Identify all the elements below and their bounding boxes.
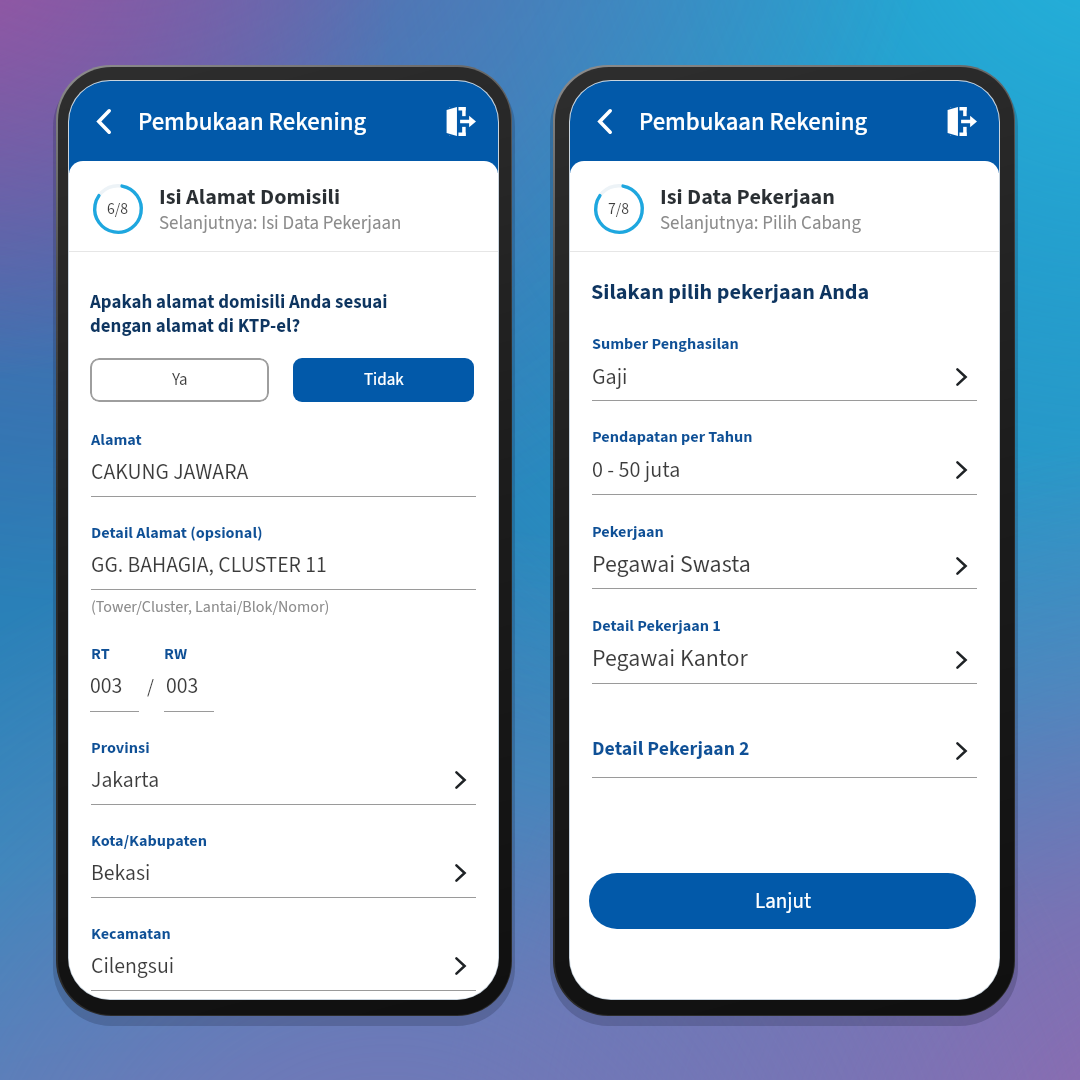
button[interactable] (570, 426, 999, 519)
staticText: Isi Data Pekerjaan (660, 181, 835, 213)
staticText: Alamat (91, 428, 142, 451)
button[interactable]: Lanjut (589, 873, 976, 929)
staticText: Detail Pekerjaan 1 (592, 614, 721, 637)
button[interactable] (570, 520, 999, 613)
staticText: Sumber Penghasilan (592, 332, 739, 355)
staticText: Bekasi (91, 858, 151, 889)
staticText: (Tower/Cluster, Lantai/Blok/Nomor) (91, 596, 330, 619)
staticText: Jakarta (91, 765, 160, 796)
staticText: RW (164, 642, 188, 665)
staticText: Gaji (592, 361, 628, 392)
button[interactable] (570, 331, 999, 424)
button[interactable] (69, 922, 498, 999)
staticText: / (147, 673, 154, 701)
staticText: Pembukaan Rekening (639, 105, 868, 140)
staticText: GG. BAHAGIA, CLUSTER 11 (91, 550, 327, 581)
staticText: 7/8 (608, 198, 630, 220)
staticText: Lanjut (755, 886, 811, 916)
staticText: Selanjutnya: Isi Data Pekerjaan (159, 210, 402, 237)
staticText: Apakah alamat domisili Anda sesuai denga… (90, 289, 388, 339)
staticText: Isi Alamat Domisili (159, 181, 341, 213)
staticText: Pekerjaan (592, 520, 664, 543)
button[interactable]: Tidak (293, 358, 474, 402)
staticText: RT (91, 642, 110, 665)
staticText: Kecamatan (91, 922, 171, 945)
staticText: Pegawai Swasta (592, 548, 751, 582)
staticText: Detail Pekerjaan 2 (592, 735, 750, 763)
staticText: Detail Alamat (opsional) (91, 521, 263, 544)
staticText: Ya (172, 368, 188, 392)
button[interactable] (69, 829, 498, 922)
staticText: Provinsi (91, 736, 150, 759)
staticText: Silakan pilih pekerjaan Anda (591, 276, 870, 308)
staticText: Pegawai Kantor (592, 642, 748, 676)
staticText: Pendapatan per Tahun (592, 425, 753, 448)
staticText: Selanjutnya: Pilih Cabang (660, 210, 861, 237)
button[interactable]: Back (81, 97, 127, 145)
staticText: 003 (166, 671, 199, 702)
button[interactable]: Back (582, 97, 628, 145)
staticText: Pembukaan Rekening (138, 105, 367, 140)
button[interactable]: Logout (938, 98, 986, 145)
staticText: 003 (90, 671, 123, 702)
button[interactable] (570, 614, 999, 707)
button[interactable] (570, 731, 999, 786)
staticText: CAKUNG JAWARA (91, 457, 249, 488)
staticText: 6/8 (107, 198, 129, 220)
staticText: 0 - 50 juta (592, 454, 681, 485)
button[interactable]: Logout (437, 98, 485, 145)
staticText: Tidak (364, 368, 404, 392)
staticText: Kota/Kabupaten (91, 829, 207, 852)
button[interactable] (69, 736, 498, 829)
staticText: Cilengsui (91, 951, 175, 982)
button[interactable]: Ya (90, 358, 269, 402)
